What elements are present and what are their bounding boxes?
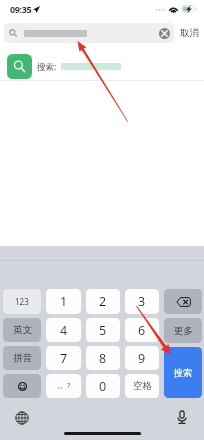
button[interactable]: Switch language: [13, 409, 31, 427]
staticText: 5: [99, 322, 107, 339]
staticText: 0: [99, 378, 107, 395]
button[interactable]: 搜索:: [0, 46, 204, 81]
staticText: 搜索:: [37, 61, 57, 73]
button[interactable]: Voice input: [173, 408, 191, 426]
button[interactable]: 搜索: [164, 347, 202, 398]
staticText: 4: [60, 322, 68, 339]
button[interactable]: 6: [125, 318, 159, 342]
button[interactable]: Emoji keyboard: [3, 374, 41, 398]
button[interactable]: 英文: [3, 318, 41, 342]
button[interactable]: [4, 23, 174, 43]
staticText: 7: [60, 350, 68, 367]
button[interactable]: 4: [46, 318, 81, 342]
staticText: 搜索: [174, 367, 192, 378]
staticText: 9: [138, 350, 146, 367]
button[interactable]: 3: [125, 289, 159, 314]
staticText: 1: [60, 293, 68, 310]
staticText: 更多: [174, 325, 193, 337]
button[interactable]: 123: [3, 289, 41, 314]
button[interactable]: 拼音: [3, 346, 41, 370]
staticText: ,。?: [58, 381, 70, 391]
button[interactable]: 5: [86, 318, 120, 342]
staticText: 空格: [133, 380, 152, 392]
staticText: 6: [138, 322, 146, 339]
staticText: 英文: [13, 324, 32, 336]
staticText: 3: [138, 293, 146, 310]
button[interactable]: 空格: [125, 374, 159, 398]
button[interactable]: 0: [86, 374, 120, 398]
staticText: 8: [99, 350, 107, 367]
button[interactable]: 2: [86, 289, 120, 314]
button[interactable]: 更多: [164, 318, 202, 343]
button[interactable]: 7: [46, 346, 81, 370]
staticText: 取消: [180, 27, 199, 39]
button[interactable]: 取消: [178, 23, 200, 43]
button[interactable]: 8: [86, 346, 120, 370]
staticText: 09:35: [10, 3, 32, 15]
button[interactable]: 9: [125, 346, 159, 370]
button[interactable]: 1: [46, 289, 81, 314]
staticText: 2: [99, 293, 107, 310]
button[interactable]: ,。?: [46, 374, 81, 398]
staticText: 拼音: [13, 352, 32, 364]
button[interactable]: Delete: [164, 289, 202, 314]
staticText: 123: [15, 296, 29, 307]
